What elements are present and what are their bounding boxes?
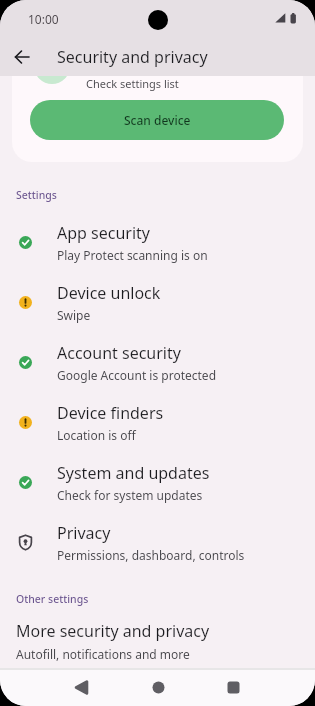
staticText: System and updates <box>57 462 210 484</box>
button[interactable] <box>57 668 105 706</box>
staticText: Autofill, notifications and more <box>16 646 190 662</box>
staticText: Location is off <box>57 427 136 443</box>
button[interactable]: App security <box>0 212 315 272</box>
staticText: Settings <box>16 188 57 202</box>
button[interactable]: Scan device <box>30 100 284 140</box>
staticText: Google Account is protected <box>57 367 217 383</box>
button[interactable] <box>209 668 257 706</box>
staticText: Play Protect scanning is on <box>57 247 208 263</box>
button[interactable] <box>134 668 182 706</box>
staticText: Scan device <box>124 112 191 128</box>
staticText: Check settings list <box>86 76 179 91</box>
staticText: Permissions, dashboard, controls <box>57 547 245 563</box>
button[interactable]: Device unlock <box>0 272 315 332</box>
staticText: Account security <box>57 342 181 364</box>
staticText: App security <box>57 222 150 244</box>
staticText: Device finders <box>57 402 164 424</box>
staticText: More security and privacy <box>16 620 210 642</box>
button[interactable]: Account security <box>0 332 315 392</box>
staticText: Device unlock <box>57 282 161 304</box>
button[interactable]: System and updates <box>0 452 315 512</box>
staticText: Security and privacy <box>57 46 208 68</box>
staticText: Privacy <box>57 522 111 544</box>
staticText: 10:00 <box>28 11 59 27</box>
staticText: Other settings <box>16 592 89 606</box>
staticText: Swipe <box>57 307 91 323</box>
button[interactable]: More security and privacy <box>0 620 315 662</box>
button[interactable] <box>0 38 44 76</box>
staticText: Check for system updates <box>57 487 203 503</box>
button[interactable]: Device finders <box>0 392 315 452</box>
button[interactable]: Privacy <box>0 512 315 572</box>
